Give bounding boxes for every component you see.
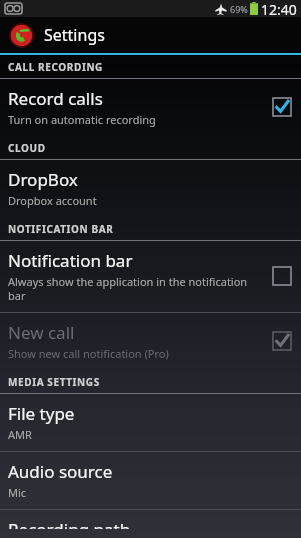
staticText: Notification bar bbox=[8, 249, 133, 272]
staticText: New call bbox=[8, 321, 75, 344]
button[interactable]: Record calls bbox=[0, 79, 301, 136]
staticText: MEDIA SETTINGS bbox=[8, 375, 100, 389]
button[interactable]: Notification bar bbox=[0, 241, 301, 312]
staticText: 69% bbox=[230, 3, 248, 15]
staticText: Recording path bbox=[8, 518, 131, 529]
other: App icon bbox=[9, 23, 34, 48]
staticText: File type bbox=[8, 402, 75, 425]
staticText: Mic bbox=[8, 485, 27, 500]
staticText: Settings bbox=[44, 24, 105, 46]
staticText: CLOUD bbox=[8, 141, 46, 155]
staticText: Record calls bbox=[8, 87, 103, 110]
staticText: Audio source bbox=[8, 460, 113, 483]
staticText: CALL RECORDING bbox=[8, 60, 103, 74]
button[interactable]: Recording path bbox=[0, 510, 301, 538]
staticText: Dropbox account bbox=[8, 193, 97, 208]
staticText: AMR bbox=[8, 427, 32, 442]
button[interactable]: File type bbox=[0, 394, 301, 451]
button[interactable]: App icon bbox=[0, 17, 301, 53]
button[interactable]: Audio source bbox=[0, 452, 301, 509]
staticText: NOTIFICATION BAR bbox=[8, 222, 114, 236]
staticText: Always show the application in the notif… bbox=[8, 274, 265, 303]
staticText: 12:40 bbox=[261, 0, 297, 17]
staticText: DropBox bbox=[8, 168, 78, 191]
staticText: Turn on automatic recording bbox=[8, 112, 156, 127]
button[interactable]: DropBox bbox=[0, 160, 301, 217]
staticText: Show new call notification (Pro) bbox=[8, 346, 169, 361]
button[interactable]: New call bbox=[0, 313, 301, 370]
